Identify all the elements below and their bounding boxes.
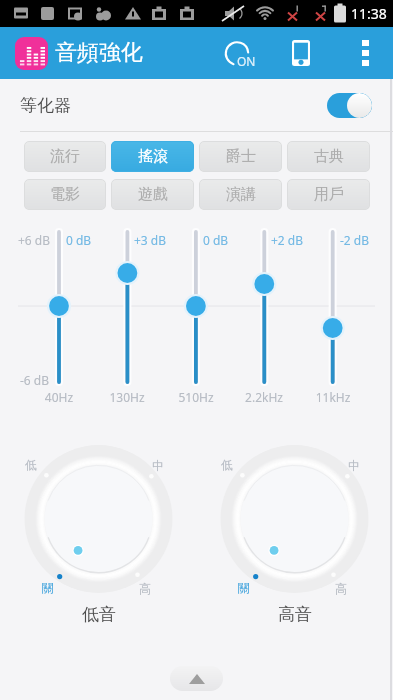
staticText: 510Hz	[166, 389, 226, 405]
button[interactable]: 等化器	[0, 79, 393, 131]
staticText: 等化器	[20, 95, 71, 116]
staticText: 高	[125, 581, 165, 596]
button[interactable]: 遊戲	[111, 179, 194, 210]
staticText: 高	[321, 581, 361, 596]
staticText: 遊戲	[138, 185, 168, 204]
staticText: 0 dB	[66, 232, 92, 248]
button[interactable]: 爵士	[199, 141, 282, 172]
staticText: +3 dB	[134, 232, 167, 248]
button[interactable]: More options	[345, 27, 385, 79]
staticText: 用戶	[314, 185, 344, 204]
staticText: 低	[11, 457, 51, 472]
staticText: 中	[138, 458, 178, 473]
staticText: ON	[237, 53, 256, 69]
staticText: -2 dB	[340, 232, 370, 248]
staticText: 2.2kHz	[234, 389, 294, 405]
staticText: 高音	[235, 604, 355, 625]
staticText: 40Hz	[29, 389, 89, 405]
button[interactable]: 古典	[287, 141, 370, 172]
staticText: 搖滾	[138, 147, 168, 166]
staticText: 關	[28, 580, 68, 595]
button[interactable]: 流行	[24, 141, 106, 172]
staticText: 爵士	[226, 147, 256, 166]
button[interactable]: 演講	[199, 179, 282, 210]
staticText: 音頻強化	[55, 39, 143, 67]
button[interactable]: 電影	[24, 179, 106, 210]
staticText: 低音	[39, 604, 159, 625]
staticText: 低	[207, 457, 247, 472]
button[interactable]: App icon	[15, 37, 48, 70]
staticText: 關	[224, 580, 264, 595]
button[interactable]: Device	[282, 27, 320, 79]
staticText: 流行	[50, 147, 80, 166]
staticText: 11kHz	[303, 389, 363, 405]
staticText: 古典	[314, 147, 344, 166]
staticText: 11:38	[351, 4, 387, 23]
button[interactable]: Power toggle	[216, 27, 262, 79]
staticText: 電影	[50, 185, 80, 204]
button[interactable]: 搖滾	[111, 141, 194, 172]
staticText: 0 dB	[203, 232, 229, 248]
staticText: +6 dB	[18, 232, 51, 248]
staticText: 中	[334, 458, 374, 473]
staticText: 130Hz	[97, 389, 157, 405]
staticText: 演講	[226, 185, 256, 204]
button[interactable]: 用戶	[287, 179, 370, 210]
staticText: -6 dB	[20, 372, 50, 388]
staticText: +2 dB	[271, 232, 304, 248]
button[interactable]: Expand	[170, 666, 223, 691]
